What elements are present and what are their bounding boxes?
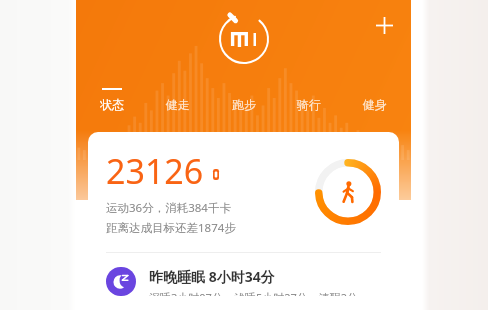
- staticText: 状态: [100, 97, 124, 112]
- button[interactable]: 健身: [357, 86, 393, 114]
- staticText: 骑行: [297, 97, 321, 112]
- staticText: 距离达成目标还差1874步: [106, 220, 236, 236]
- button[interactable]: 跑步: [226, 86, 262, 114]
- button[interactable]: 昨晚睡眠 8小时34分: [88, 253, 399, 310]
- staticText: 23126: [106, 148, 204, 194]
- staticText: 昨晚睡眠 8小时34分: [149, 267, 275, 286]
- staticText: 深睡3小时07分，浅睡5小时27分，清醒2分: [149, 290, 359, 296]
- button[interactable]: 骑行: [291, 86, 327, 114]
- button[interactable]: 23126: [88, 132, 399, 310]
- button[interactable]: 健走: [160, 86, 196, 114]
- staticText: 运动36分，消耗384千卡: [106, 200, 231, 216]
- staticText: 健走: [166, 97, 190, 112]
- staticText: 跑步: [232, 97, 256, 112]
- button[interactable]: Add: [367, 8, 401, 42]
- button[interactable]: 状态: [94, 86, 130, 114]
- staticText: 健身: [363, 97, 387, 112]
